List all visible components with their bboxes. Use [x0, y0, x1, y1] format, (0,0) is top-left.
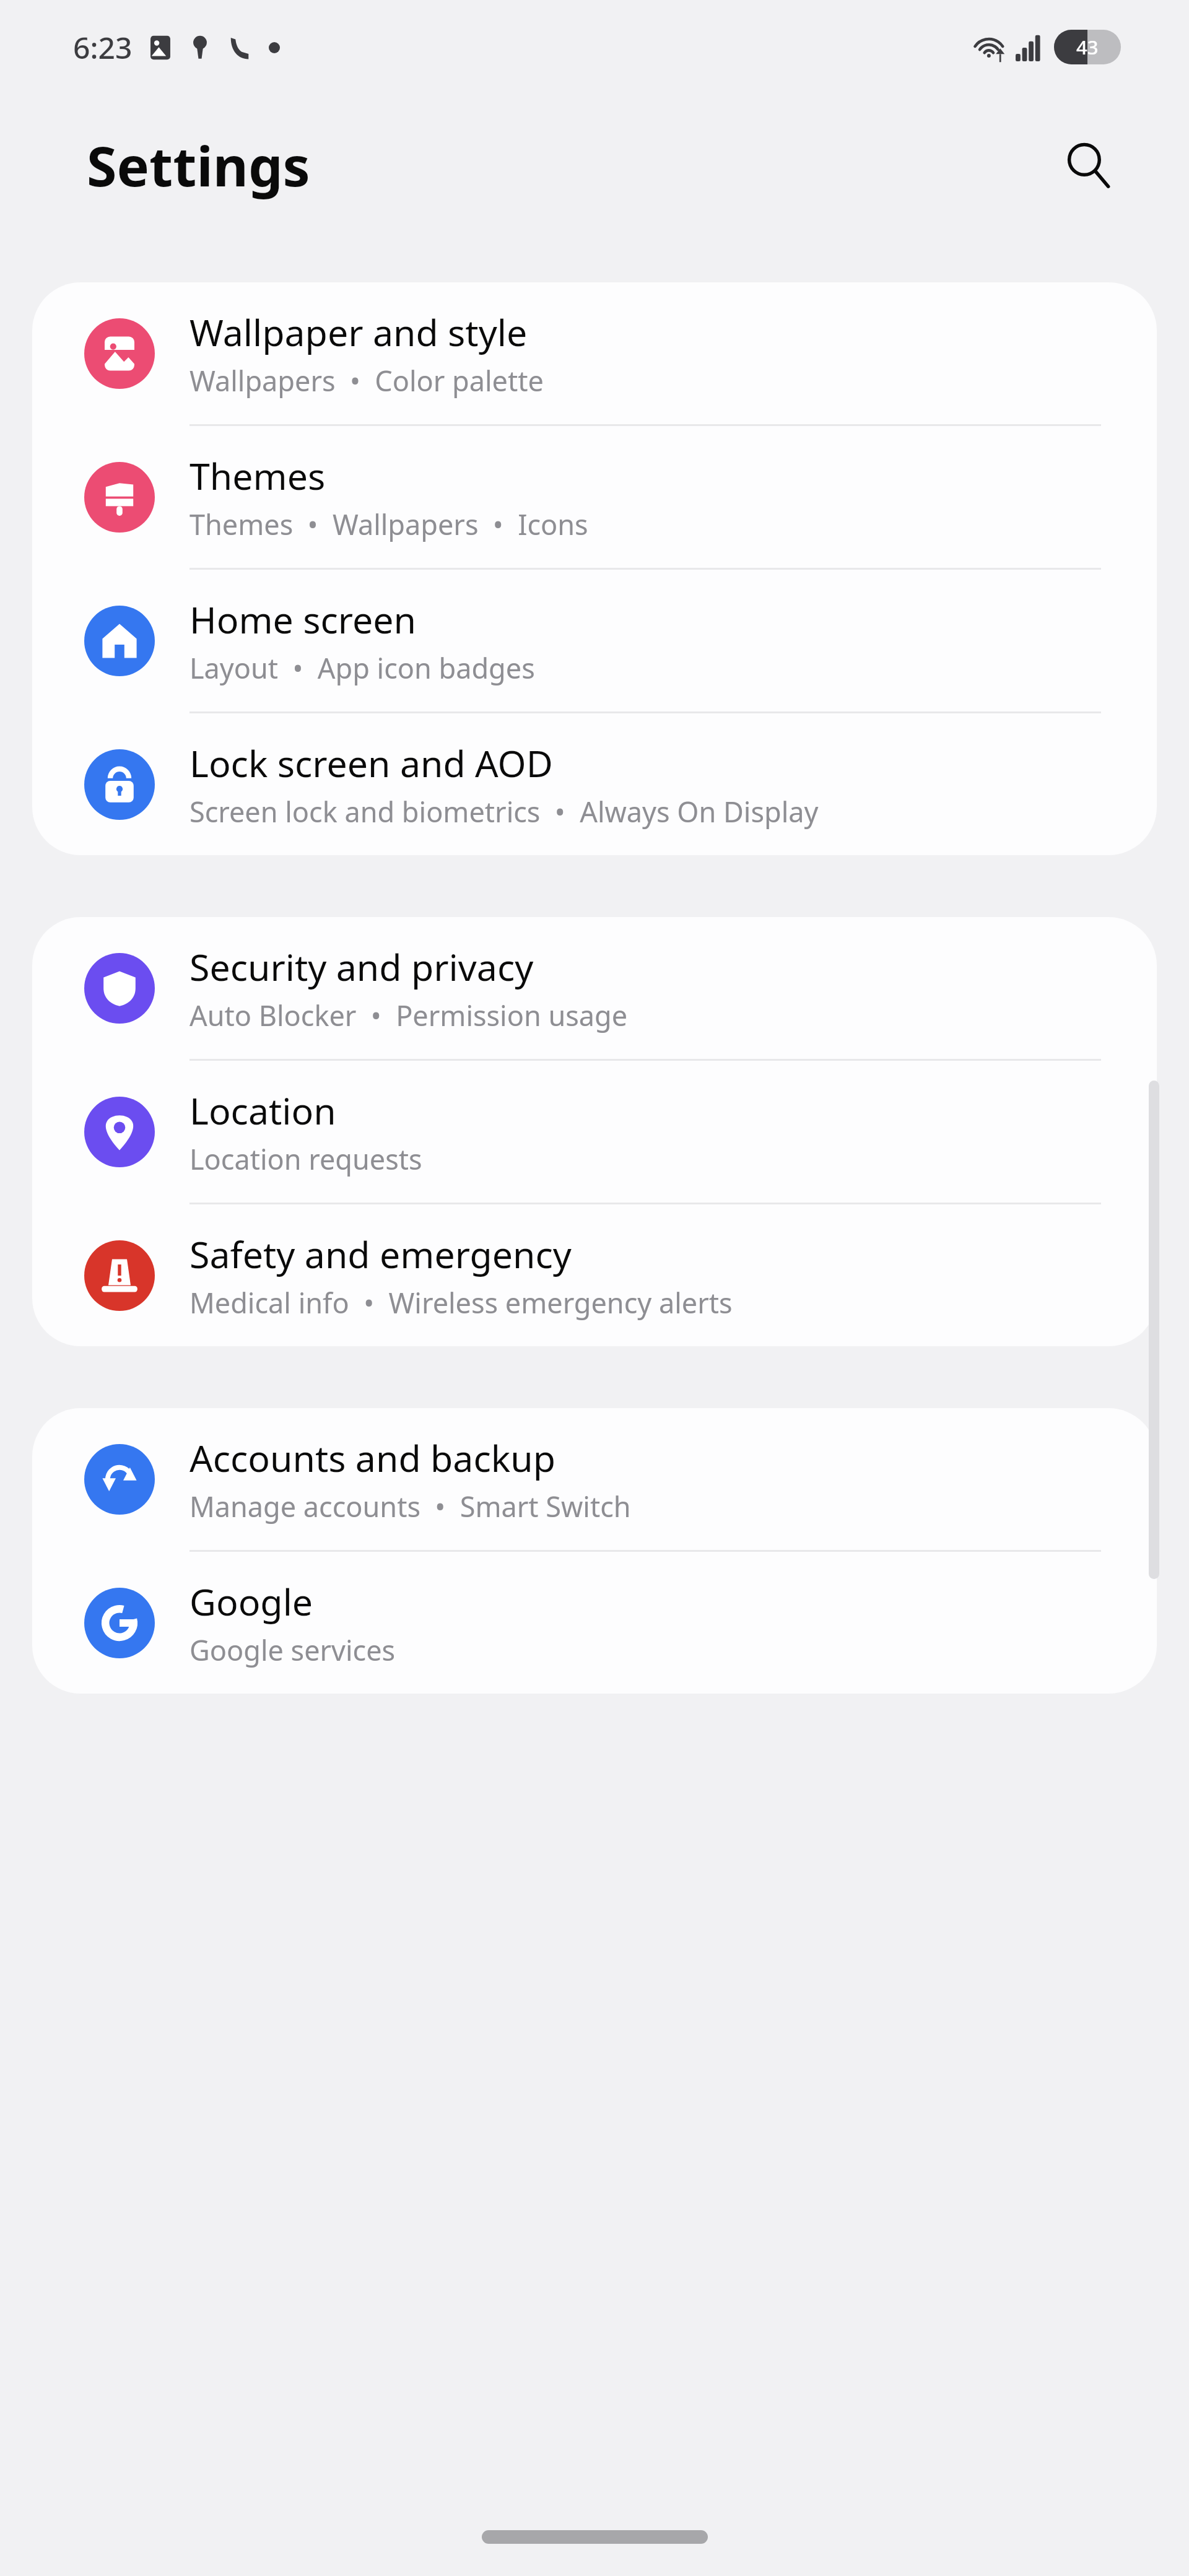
staticText: Wallpapers • Color palette	[189, 362, 544, 399]
staticText: Settings	[87, 128, 310, 202]
staticText: Wallpaper and style	[189, 307, 528, 357]
button[interactable]: Home screen	[32, 570, 1157, 713]
staticText: Google services	[189, 1631, 396, 1669]
staticText: Auto Blocker • Permission usage	[189, 996, 628, 1034]
button[interactable]: Google	[32, 1552, 1157, 1694]
button[interactable]: Safety and emergency	[32, 1204, 1157, 1346]
button[interactable]: Search	[1048, 125, 1128, 206]
staticText: Screen lock and biometrics • Always On D…	[189, 793, 819, 830]
staticText: 43	[1076, 34, 1099, 60]
staticText: Medical info • Wireless emergency alerts	[189, 1284, 733, 1321]
staticText: Layout • App icon badges	[189, 649, 535, 687]
staticText: Location requests	[189, 1140, 422, 1178]
button[interactable]: Security and privacy	[32, 917, 1157, 1061]
staticText: Manage accounts • Smart Switch	[189, 1487, 631, 1525]
staticText: Themes	[189, 451, 326, 500]
staticText: Lock screen and AOD	[189, 738, 553, 788]
button[interactable]: Themes	[32, 426, 1157, 570]
button[interactable]: Accounts and backup	[32, 1408, 1157, 1552]
staticText: Google	[189, 1577, 313, 1626]
staticText: Home screen	[189, 594, 416, 644]
button[interactable]: Wallpaper and style	[32, 282, 1157, 426]
staticText: Accounts and backup	[189, 1433, 556, 1482]
button[interactable]: Lock screen and AOD	[32, 713, 1157, 855]
staticText: Location	[189, 1086, 336, 1135]
button[interactable]: Location	[32, 1061, 1157, 1204]
staticText: Security and privacy	[189, 942, 534, 991]
staticText: Themes • Wallpapers • Icons	[189, 505, 588, 543]
staticText: Safety and emergency	[189, 1229, 572, 1279]
staticText: 6:23	[73, 27, 133, 67]
